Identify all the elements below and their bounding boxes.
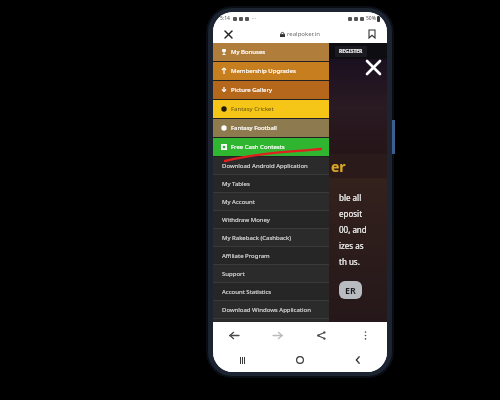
- staticText: ble all: [339, 192, 362, 203]
- button[interactable]: Fantasy Cricket: [213, 100, 329, 118]
- button[interactable]: REGISTER: [335, 46, 367, 57]
- button[interactable]: Download Windows Application: [213, 301, 329, 318]
- staticText: My Bonuses: [231, 48, 266, 56]
- staticText: Membership Upgrades: [231, 67, 296, 75]
- staticText: 50%: [366, 15, 376, 22]
- staticText: My Tables: [222, 180, 250, 188]
- staticText: ···: [252, 15, 257, 22]
- button[interactable]: Picture Gallery: [213, 81, 329, 99]
- button[interactable]: Back: [213, 322, 256, 348]
- button[interactable]: My Account: [213, 193, 329, 210]
- button[interactable]: ER: [339, 281, 362, 299]
- button[interactable]: Support: [213, 265, 329, 282]
- button[interactable]: Download Android Application: [213, 157, 329, 174]
- staticText: Download Windows Application: [222, 306, 311, 314]
- button[interactable]: Bookmark: [365, 27, 379, 41]
- staticText: th us.: [339, 256, 360, 267]
- button[interactable]: Fantasy Football: [213, 119, 329, 137]
- staticText: er: [331, 157, 346, 176]
- button[interactable]: Forward: [256, 322, 299, 348]
- staticText: My Account: [222, 198, 255, 206]
- staticText: Fantasy Cricket: [231, 105, 274, 113]
- staticText: Free Cash Contests: [231, 143, 285, 151]
- button[interactable]: Account Statistics: [213, 283, 329, 300]
- staticText: Picture Gallery: [231, 86, 272, 94]
- button[interactable]: My Rakeback (Cashback): [213, 229, 329, 246]
- button[interactable]: My Tables: [213, 175, 329, 192]
- staticText: REGISTER: [339, 48, 363, 55]
- staticText: ER: [345, 284, 356, 296]
- staticText: Support: [222, 270, 245, 278]
- staticText: Affiliate Program: [222, 252, 270, 260]
- staticText: 5:14: [220, 15, 230, 22]
- staticText: izes as: [339, 240, 364, 251]
- button[interactable]: Withdraw Money: [213, 211, 329, 228]
- staticText: Withdraw Money: [222, 216, 270, 224]
- staticText: My Rakeback (Cashback): [222, 234, 291, 242]
- button[interactable]: Free Cash Contests: [213, 138, 329, 156]
- button[interactable]: Recents: [213, 348, 271, 372]
- button[interactable]: My Bonuses: [213, 43, 329, 61]
- staticText: Account Statistics: [222, 288, 272, 296]
- button[interactable]: Home: [271, 348, 329, 372]
- button[interactable]: Close: [363, 57, 383, 77]
- staticText: Download Android Application: [222, 162, 308, 170]
- staticText: Fantasy Football: [231, 124, 277, 132]
- staticText: 00, and: [339, 224, 367, 235]
- staticText: eposit: [339, 208, 363, 219]
- button[interactable]: Share: [299, 322, 343, 348]
- staticText: realpoker.in: [287, 30, 320, 38]
- button[interactable]: Back: [329, 348, 387, 372]
- button[interactable]: More options: [343, 322, 387, 348]
- button[interactable]: Membership Upgrades: [213, 62, 329, 80]
- button[interactable]: Close tab: [221, 27, 235, 41]
- button[interactable]: Affiliate Program: [213, 247, 329, 264]
